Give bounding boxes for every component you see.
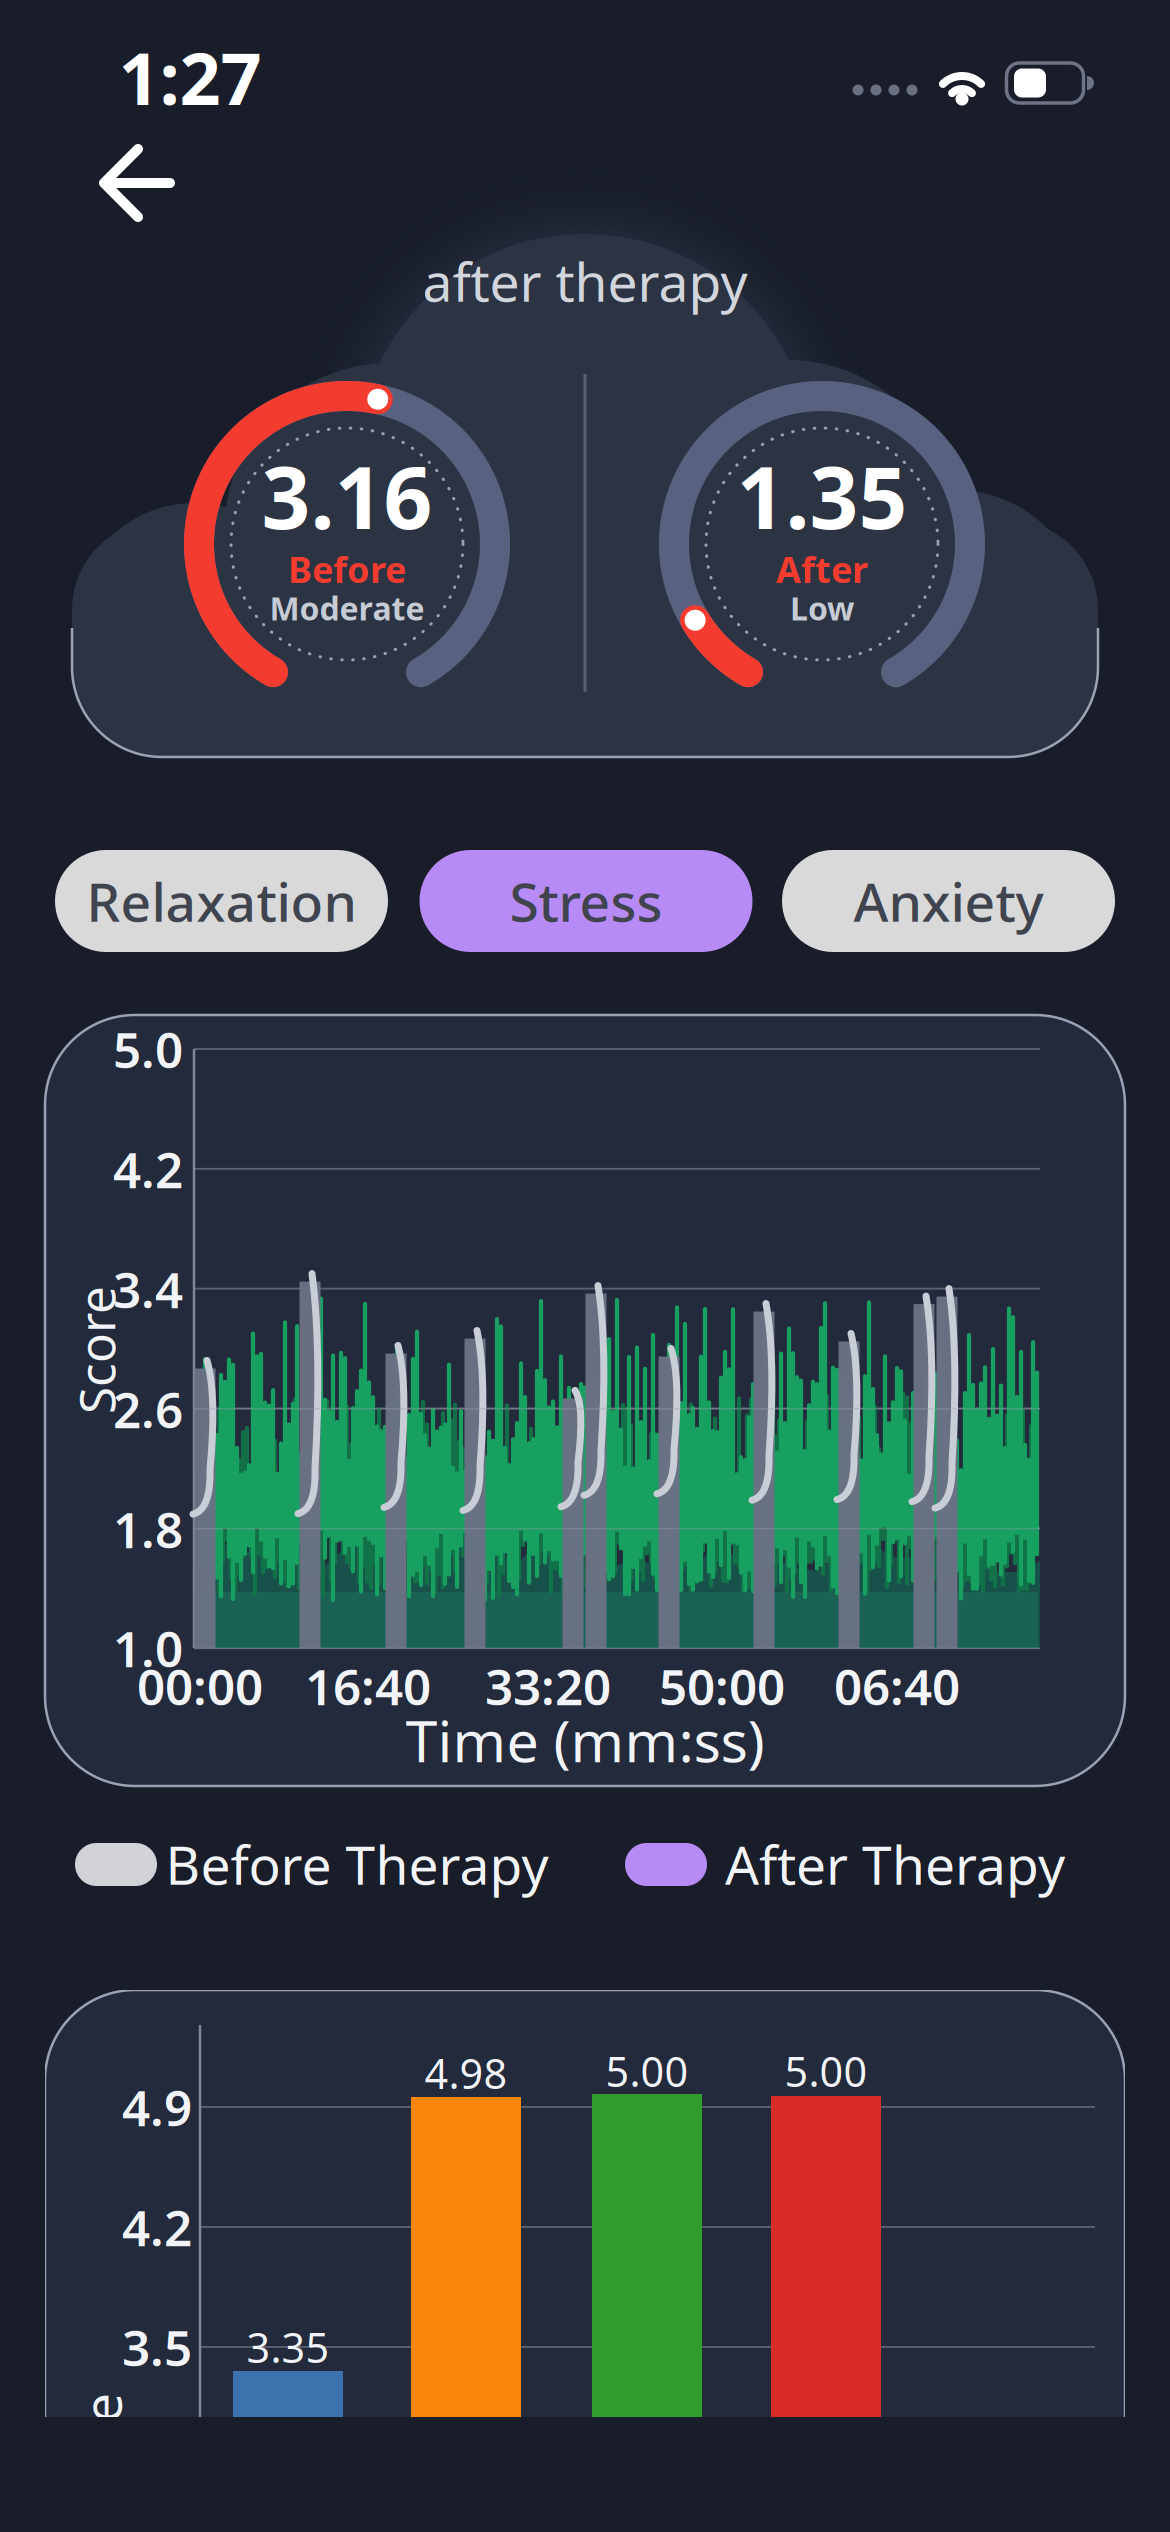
staticText: 1:27 [118, 29, 261, 125]
staticText: 00:00 [137, 1653, 263, 1719]
staticText: Score [32, 1317, 160, 1383]
staticText: 5.00 [784, 2044, 867, 2098]
button[interactable]: Stress [419, 850, 752, 952]
staticText: 4.98 [424, 2046, 507, 2100]
staticText: 1.0 [113, 1615, 183, 1681]
staticText: 1.35 [736, 439, 907, 553]
staticText: Low [790, 587, 854, 629]
staticText: Before Therapy [165, 1829, 548, 1899]
staticText: 2.6 [113, 1376, 183, 1442]
button[interactable]: Back [98, 149, 176, 217]
staticText: 3.4 [113, 1256, 183, 1322]
button[interactable]: Anxiety [782, 850, 1115, 952]
staticText: 3.16 [261, 439, 432, 553]
staticText: After [776, 545, 868, 593]
staticText: 4.2 [113, 1136, 183, 1202]
staticText: 5.0 [113, 1016, 183, 1082]
staticText: 1.8 [113, 1496, 183, 1562]
staticText: After Therapy [725, 1829, 1065, 1899]
staticText: 3.35 [246, 2320, 329, 2374]
staticText: 4.2 [122, 2194, 192, 2260]
staticText: after therapy [422, 246, 747, 316]
staticText: Stress [509, 866, 662, 936]
staticText: Moderate [269, 587, 424, 629]
staticText: 4.9 [122, 2074, 192, 2140]
staticText: Before [288, 545, 406, 593]
staticText: 3.5 [122, 2314, 192, 2380]
staticText: Relaxation [86, 866, 356, 936]
staticText: 06:40 [834, 1653, 960, 1719]
staticText: 33:20 [485, 1653, 611, 1719]
staticText: Time (mm:ss) [405, 1702, 764, 1778]
staticText: 16:40 [305, 1653, 431, 1719]
staticText: 5.00 [605, 2044, 688, 2098]
button[interactable]: Relaxation [55, 850, 388, 952]
staticText: 50:00 [659, 1653, 785, 1719]
staticText: Anxiety [853, 866, 1043, 936]
